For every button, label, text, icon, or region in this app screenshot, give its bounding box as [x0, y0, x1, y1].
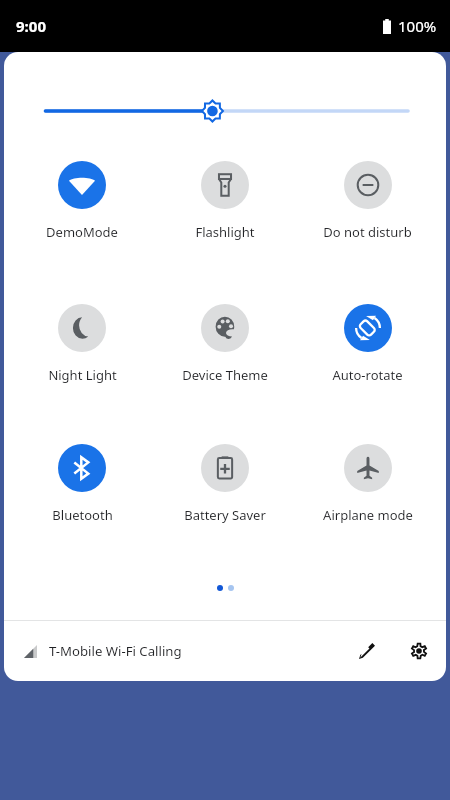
button[interactable]: Airplane mode	[296, 444, 439, 524]
button[interactable]: Flashlight	[153, 161, 296, 241]
button[interactable]: Edit tiles	[347, 631, 387, 671]
button[interactable]: Brightness	[4, 96, 446, 126]
staticText: Airplane mode	[323, 506, 413, 524]
button[interactable]: Auto-rotate	[296, 304, 439, 384]
button[interactable]: Bluetooth	[11, 444, 153, 524]
staticText: Auto-rotate	[332, 366, 403, 384]
staticText: Flashlight	[195, 223, 255, 241]
button[interactable]: DemoMode	[11, 161, 153, 241]
staticText: Bluetooth	[52, 506, 113, 524]
staticText: T-Mobile Wi-Fi Calling	[49, 642, 182, 660]
button[interactable]: Settings	[399, 631, 439, 671]
button[interactable]: Battery Saver	[153, 444, 296, 524]
button[interactable]: Night Light	[11, 304, 153, 384]
staticText: Night Light	[48, 366, 117, 384]
staticText: 100%	[398, 16, 437, 36]
button[interactable]: Do not disturb	[296, 161, 439, 241]
staticText: Device Theme	[182, 366, 268, 384]
staticText: Do not disturb	[323, 223, 412, 241]
staticText: 9:00	[16, 16, 46, 36]
button[interactable]: Device Theme	[153, 304, 296, 384]
staticText: Battery Saver	[184, 506, 266, 524]
staticText: DemoMode	[46, 223, 118, 241]
